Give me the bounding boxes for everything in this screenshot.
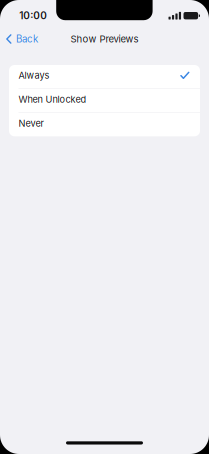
staticText: When Unlocked — [18, 94, 86, 105]
button[interactable]: Always — [9, 65, 200, 88]
button[interactable]: Never — [9, 113, 200, 136]
staticText: Never — [18, 118, 43, 129]
button[interactable]: When Unlocked — [9, 89, 200, 112]
staticText: Show Previews — [70, 33, 138, 45]
staticText: 10:00 — [19, 10, 47, 22]
staticText: Back — [16, 33, 38, 45]
staticText: Always — [18, 70, 49, 81]
button[interactable]: Back — [0, 29, 44, 49]
